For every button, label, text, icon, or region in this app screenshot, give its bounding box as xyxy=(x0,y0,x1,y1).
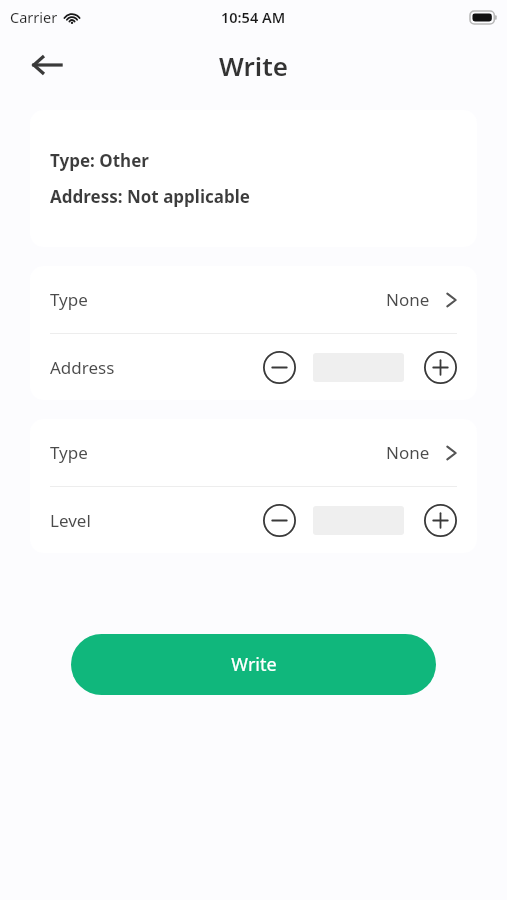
button[interactable]: Decrease Address xyxy=(262,350,296,384)
staticText: Address xyxy=(50,356,115,379)
staticText: Address: Not applicable xyxy=(50,185,250,208)
button[interactable]: Type xyxy=(30,419,477,486)
staticText: Type xyxy=(50,441,88,464)
staticText: None xyxy=(386,288,430,311)
staticText: Write xyxy=(231,652,277,677)
button[interactable]: Decrease Level xyxy=(262,503,296,537)
button[interactable]: Type xyxy=(30,266,477,333)
button[interactable]: Increase Level xyxy=(423,503,457,537)
staticText: Write xyxy=(219,48,288,83)
staticText: Type xyxy=(50,288,88,311)
button[interactable]: Write xyxy=(71,634,436,695)
button[interactable]: Back xyxy=(22,40,72,90)
staticText: Type: Other xyxy=(50,149,149,172)
button[interactable]: Increase Address xyxy=(423,350,457,384)
staticText: None xyxy=(386,441,430,464)
staticText: Level xyxy=(50,509,91,532)
staticText: 10:54 AM xyxy=(221,7,286,27)
staticText: Carrier xyxy=(10,7,58,27)
button[interactable]: Type: Other xyxy=(30,110,477,247)
